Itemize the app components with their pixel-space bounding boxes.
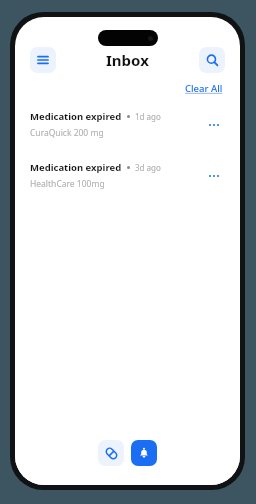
button[interactable]: Notifications [131, 440, 157, 466]
staticText: Clear All [185, 82, 223, 95]
staticText: 3d ago [135, 162, 161, 173]
staticText: HealthCare 100mg [30, 178, 105, 190]
staticText: Medication expired [30, 110, 122, 123]
button[interactable]: Clear All [183, 81, 225, 96]
button[interactable]: Medication expired [15, 159, 240, 192]
staticText: 1d ago [135, 111, 161, 122]
button[interactable]: More options [203, 165, 225, 187]
button[interactable]: Medications [98, 440, 124, 466]
staticText: Inbox [106, 50, 149, 70]
button[interactable]: More options [203, 114, 225, 136]
button[interactable]: Search [199, 47, 225, 73]
button[interactable]: Medication expired [15, 108, 240, 141]
staticText: Medication expired [30, 161, 122, 174]
button[interactable]: Menu [30, 47, 56, 73]
staticText: CuraQuick 200 mg [30, 127, 104, 139]
